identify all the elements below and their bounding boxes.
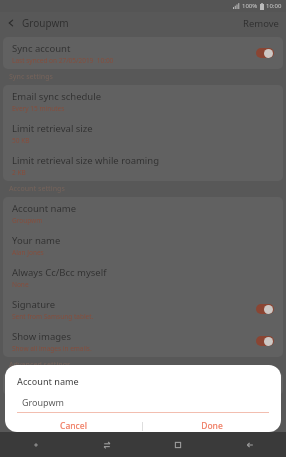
button[interactable]: Account name <box>3 197 283 229</box>
staticText: 100% <box>242 2 258 10</box>
button[interactable]: Server settings <box>3 373 283 395</box>
staticText: Server settings <box>12 378 79 391</box>
button[interactable]: Limit retrieval size while roaming <box>3 149 283 181</box>
staticText: Alan Jones <box>12 248 44 257</box>
staticText: None <box>12 280 29 289</box>
staticText: Sync account <box>12 42 71 55</box>
staticText: Remove <box>243 17 279 30</box>
button[interactable]: Done <box>143 420 281 432</box>
button[interactable]: Add <box>0 432 71 457</box>
button[interactable]: Toggle Signature <box>256 304 274 314</box>
staticText: Sync settings <box>9 72 53 82</box>
button[interactable]: Cancel <box>5 420 142 432</box>
button[interactable]: Signature <box>3 293 283 325</box>
staticText: Done <box>201 420 223 432</box>
button[interactable]: Always Cc/Bcc myself <box>3 261 283 293</box>
staticText: Account name <box>17 375 79 387</box>
staticText: Cancel <box>60 420 87 432</box>
staticText: 10:00 <box>266 2 282 10</box>
staticText: Email sync schedule <box>12 90 102 103</box>
staticText: Signature <box>12 298 56 311</box>
button[interactable]: Home <box>142 432 214 457</box>
button[interactable]: Back <box>214 432 286 457</box>
button[interactable]: Show images <box>3 325 283 357</box>
staticText: Groupwm <box>22 396 64 408</box>
staticText: Limit retrieval size <box>12 122 93 135</box>
staticText: 50 KB <box>12 136 30 145</box>
button[interactable]: Remove <box>236 13 286 34</box>
button[interactable]: Recent apps <box>71 432 142 457</box>
staticText: Your name <box>12 234 61 247</box>
staticText: Sent from Samsung tablet. <box>12 312 94 321</box>
staticText: Limit retrieval size while roaming <box>12 154 160 167</box>
button[interactable]: Your name <box>3 229 283 261</box>
staticText: Groupwm <box>22 16 69 30</box>
staticText: Last synced on 27/05/2019 10:00 <box>12 56 114 65</box>
staticText: Every 15 minutes <box>12 104 65 113</box>
button[interactable]: Sync account <box>3 37 283 69</box>
button[interactable]: Email sync schedule <box>3 85 283 117</box>
staticText: Groupwm <box>12 216 43 225</box>
staticText: Account name <box>12 202 77 215</box>
button[interactable]: Back <box>0 12 22 34</box>
staticText: Advanced settings <box>9 360 71 370</box>
staticText: Account settings <box>9 184 65 194</box>
staticText: Always Cc/Bcc myself <box>12 266 107 279</box>
button[interactable]: Toggle Show images <box>256 336 274 346</box>
staticText: Show images <box>12 330 71 343</box>
staticText: Show all images in emails. <box>12 344 92 353</box>
button[interactable]: Toggle Sync account <box>256 48 274 58</box>
button[interactable]: Limit retrieval size <box>3 117 283 149</box>
staticText: 2 KB <box>12 168 26 177</box>
